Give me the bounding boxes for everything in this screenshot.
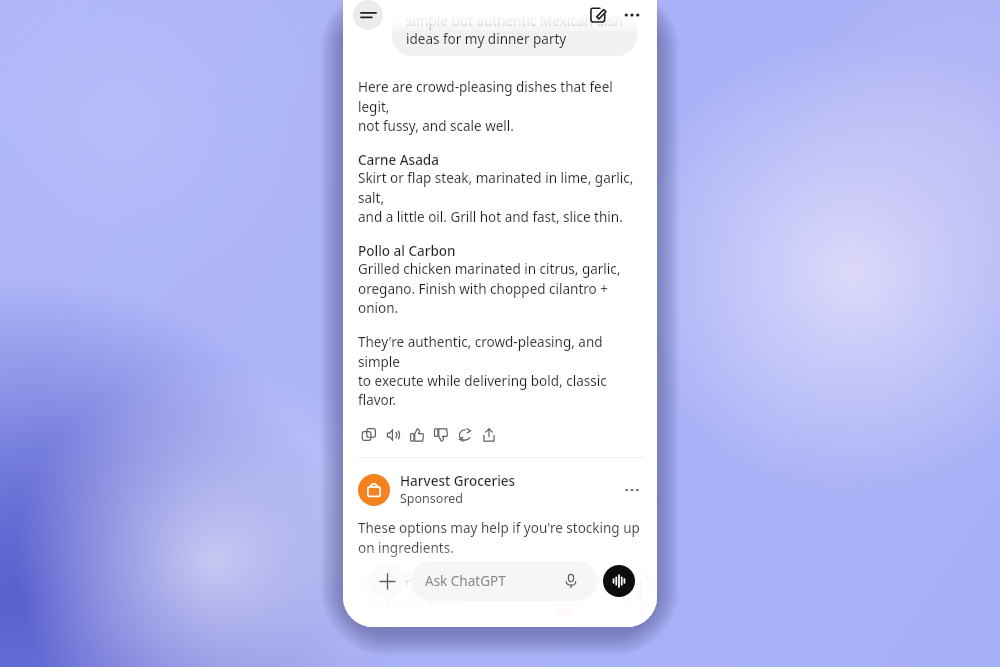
staticText: Skirt or flap steak, marinated in lime, … xyxy=(358,169,645,226)
button[interactable]: Share xyxy=(477,423,501,447)
button[interactable]: Copy xyxy=(357,423,381,447)
staticText: They're authentic, crowd-pleasing, and s… xyxy=(358,333,645,409)
staticText: simple but authentic Mexican dish xyxy=(406,12,623,30)
staticText: Ask ChatGPT xyxy=(425,572,506,590)
staticText: Carne Asada xyxy=(358,151,439,169)
staticText: Grilled chicken marinated in citrus, gar… xyxy=(358,260,645,317)
button[interactable]: More options xyxy=(619,477,645,503)
staticText: Sponsored xyxy=(400,490,464,507)
button[interactable]: Regenerate xyxy=(453,423,477,447)
staticText: In stock • $5.99 xyxy=(370,594,460,611)
staticText: Ember Co. Hot Sauce xyxy=(370,573,500,591)
staticText: Here are crowd-pleasing dishes that feel… xyxy=(358,78,645,135)
staticText: These options may help if you're stockin… xyxy=(358,519,640,557)
button[interactable]: Good response xyxy=(405,423,429,447)
button[interactable]: More xyxy=(617,0,647,30)
button[interactable]: Ember Co. Hot Sauce xyxy=(358,573,606,627)
staticText: Pollo al Carbon xyxy=(358,242,456,260)
button[interactable]: Bad response xyxy=(429,423,453,447)
button[interactable]: New chat xyxy=(583,0,613,30)
button[interactable]: Ask ChatGPT xyxy=(411,561,597,601)
button[interactable]: Voice mode xyxy=(603,565,635,597)
button[interactable]: Dictate xyxy=(559,569,583,593)
button[interactable]: Add attachment xyxy=(369,563,405,599)
button[interactable]: Read aloud xyxy=(381,423,405,447)
button[interactable]: Nopal Salsa Verde xyxy=(616,573,657,627)
staticText: Harvest Groceries xyxy=(400,472,516,490)
staticText: ideas for my dinner party xyxy=(406,30,567,48)
button[interactable]: Menu xyxy=(353,0,383,30)
button[interactable] xyxy=(358,474,390,506)
